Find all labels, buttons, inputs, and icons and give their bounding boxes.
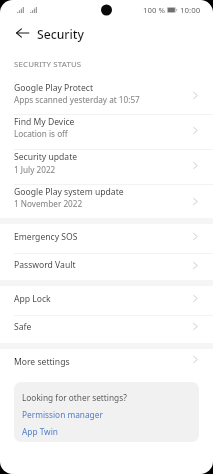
button[interactable]: App Twin [22,426,58,437]
staticText: Google Play system update [14,186,124,198]
staticText: SECURITY STATUS [14,59,82,70]
staticText: App Lock [14,293,51,305]
staticText: Location is off [14,128,68,139]
staticText: Security update [14,151,78,163]
staticText: Password Vault [14,259,76,271]
staticText: 1 July 2022 [14,164,56,175]
button[interactable]: More settings [0,349,213,376]
staticText: 1 November 2022 [14,198,83,209]
button[interactable]: Google Play Protect [0,78,213,113]
staticText: 10:00 [180,5,201,16]
staticText: Find My Device [14,116,75,128]
staticText: Apps scanned yesterday at 10:57 [14,94,140,105]
button[interactable]: App Lock [0,286,213,314]
button[interactable]: Find My Device [0,113,213,148]
button[interactable]: Back [10,24,34,44]
button[interactable]: Emergency SOS [0,224,213,252]
staticText: Security [37,26,84,43]
button[interactable]: Safe [0,314,213,343]
button[interactable]: Google Play system update [0,183,213,218]
staticText: Google Play Protect [14,82,94,94]
staticText: Safe [14,321,32,333]
staticText: Emergency SOS [14,231,78,243]
button[interactable]: Permission manager [22,409,103,420]
staticText: 100 % [143,5,165,16]
button[interactable]: Security update [0,148,213,183]
button[interactable]: Password Vault [0,252,213,280]
staticText: Looking for other settings? [22,392,127,403]
staticText: More settings [14,356,70,368]
